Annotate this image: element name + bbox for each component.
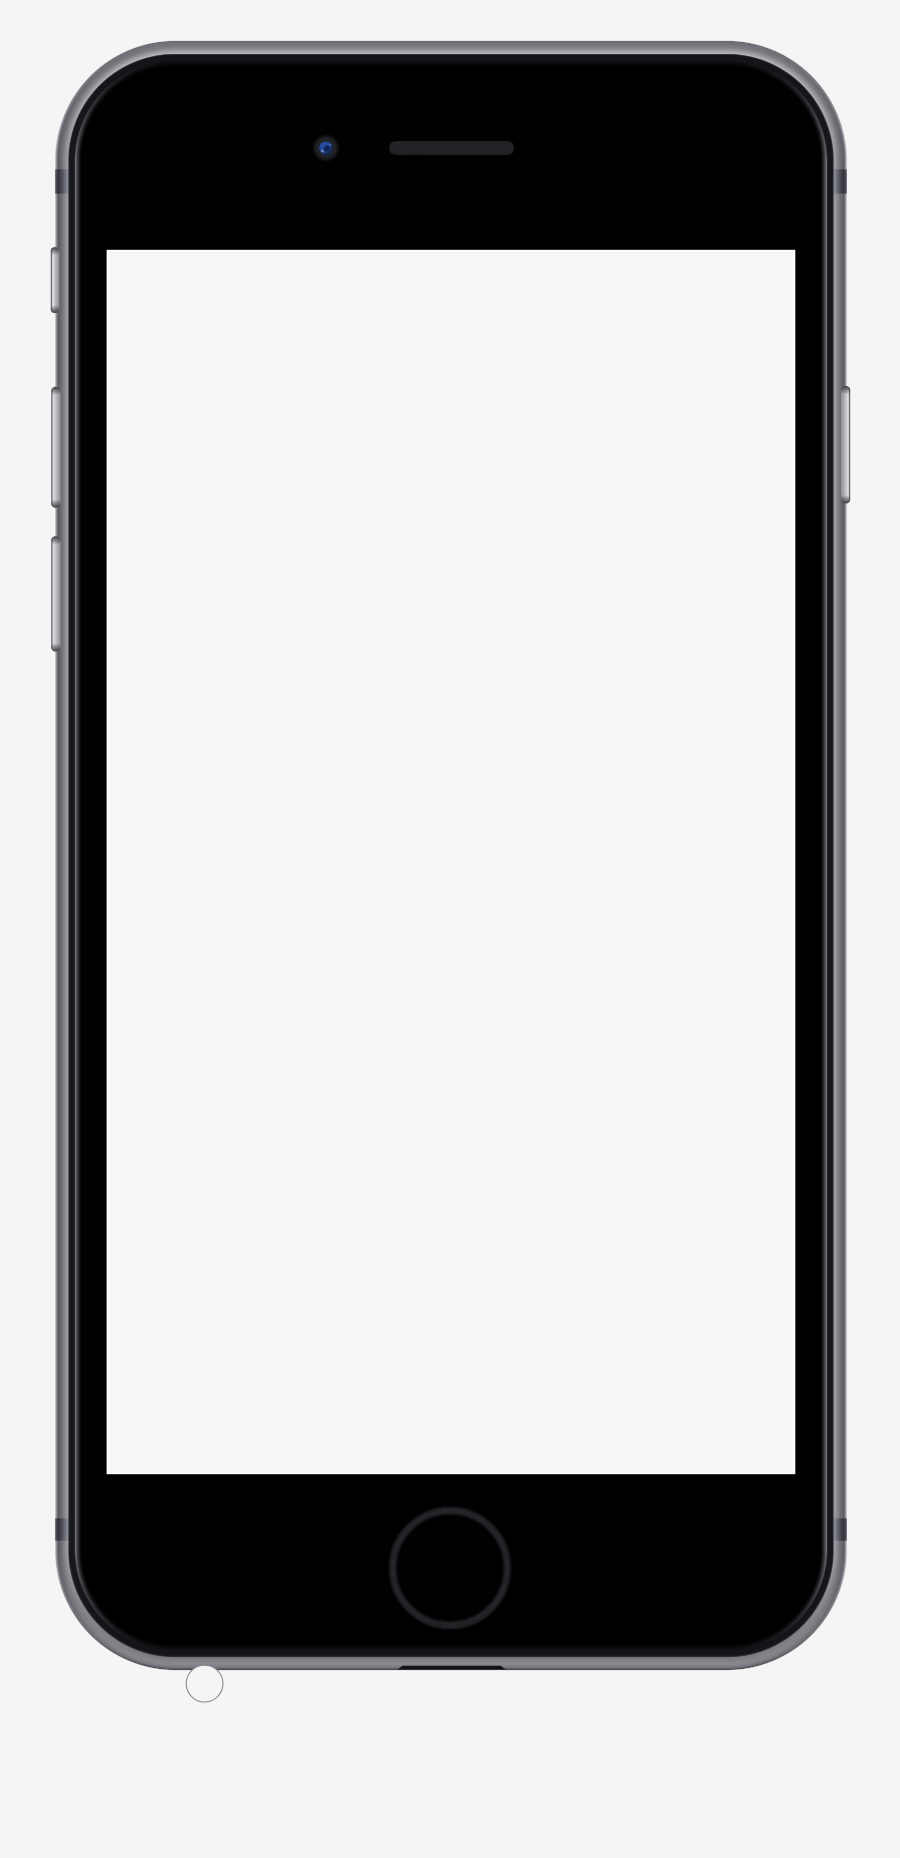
button[interactable]: Power button [836,384,858,505]
button[interactable]: Phone screen [106,249,795,1474]
button[interactable]: Ring silent switch [44,246,66,314]
button[interactable]: Volume up [44,385,66,509]
button[interactable]: Home button [389,1507,511,1629]
button[interactable]: Volume down [44,535,66,653]
